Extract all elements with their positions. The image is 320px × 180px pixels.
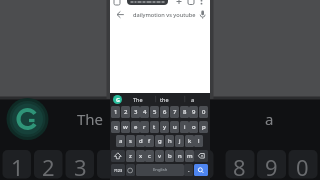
staticText: 1 [11, 152, 24, 180]
staticText: d [139, 137, 143, 145]
staticText: a [265, 109, 274, 129]
staticText: 4 [143, 108, 147, 116]
staticText: a [119, 137, 123, 145]
button[interactable]: 0 [199, 106, 208, 118]
button[interactable]: z [126, 150, 135, 162]
staticText: 7 [193, 152, 206, 180]
button[interactable]: G [113, 95, 122, 104]
button[interactable]: q [111, 121, 120, 133]
staticText: English [153, 167, 168, 173]
staticText: 9 [265, 152, 278, 180]
staticText: 6 [163, 108, 167, 116]
staticText: 5 [153, 108, 157, 116]
button[interactable]: u [170, 121, 179, 133]
staticText: 2 [42, 152, 55, 180]
button[interactable]: 4 [140, 106, 149, 118]
staticText: o [192, 123, 196, 131]
button[interactable]: m [185, 150, 194, 162]
staticText: n [178, 152, 182, 160]
staticText: x [139, 152, 143, 160]
staticText: 3 [74, 152, 87, 180]
button[interactable]: p [199, 121, 208, 133]
staticText: 8 [233, 152, 246, 180]
button[interactable]: ?123 [111, 164, 125, 176]
button[interactable]: dailymotion vs youtube [133, 10, 203, 20]
button[interactable]: a [183, 95, 203, 104]
staticText: s [129, 137, 132, 145]
button[interactable]: o [189, 121, 198, 133]
staticText: c [148, 152, 151, 160]
staticText: t [153, 123, 156, 131]
button[interactable]: l [194, 135, 203, 147]
button[interactable]: 6 [160, 106, 169, 118]
staticText: y [163, 123, 167, 131]
staticText: w [123, 123, 128, 131]
staticText: 1 [114, 108, 118, 116]
staticText: The [77, 109, 104, 129]
button[interactable]: k [185, 135, 194, 147]
button[interactable]: b [165, 150, 174, 162]
button[interactable]: h [165, 135, 174, 147]
staticText: the [160, 96, 169, 103]
button[interactable] [111, 150, 125, 162]
button[interactable]: r [140, 121, 149, 133]
staticText: b [168, 152, 172, 160]
staticText: ?123 [114, 168, 123, 173]
staticText: u [173, 123, 177, 131]
button[interactable]: 8 [180, 106, 189, 118]
staticText: The [133, 96, 143, 103]
staticText: k [188, 137, 192, 145]
button[interactable]: y [160, 121, 169, 133]
staticText: m [187, 152, 193, 160]
staticText: q [114, 123, 118, 131]
staticText: 0 [202, 108, 206, 116]
staticText: g [158, 137, 162, 145]
button[interactable] [126, 164, 135, 176]
button[interactable]: w [121, 121, 130, 133]
button[interactable]: a [116, 135, 125, 147]
staticText: h [168, 137, 172, 145]
button[interactable] [127, 0, 168, 5]
button[interactable]: 1 [111, 106, 120, 118]
button[interactable] [194, 164, 208, 176]
button[interactable]: the [154, 95, 174, 104]
staticText: l [198, 137, 200, 145]
button[interactable] [194, 150, 208, 162]
button[interactable]: 2 [121, 106, 130, 118]
button[interactable]: 9 [189, 106, 198, 118]
button[interactable]: 7 [170, 106, 179, 118]
staticText: r [143, 123, 146, 131]
staticText: j [179, 137, 181, 145]
staticText: z [129, 152, 132, 160]
button[interactable]: English [136, 164, 184, 176]
staticText: 2 [124, 108, 128, 116]
button[interactable]: j [175, 135, 184, 147]
button[interactable]: s [126, 135, 135, 147]
staticText: . [188, 166, 190, 174]
button[interactable]: . [184, 164, 193, 176]
staticText: G [116, 96, 120, 103]
button[interactable]: n [175, 150, 184, 162]
staticText: p [202, 123, 206, 131]
button[interactable]: e [131, 121, 140, 133]
staticText: 8 [183, 108, 187, 116]
button[interactable]: The [128, 95, 148, 104]
button[interactable]: 5 [150, 106, 159, 118]
staticText: e [134, 123, 138, 131]
button[interactable]: d [136, 135, 145, 147]
button[interactable]: t [150, 121, 159, 133]
staticText: 3 [134, 108, 138, 116]
button[interactable]: g [155, 135, 164, 147]
button[interactable]: i [180, 121, 189, 133]
button[interactable]: v [155, 150, 164, 162]
staticText: dailymotion vs youtube [133, 11, 196, 19]
button[interactable]: f [145, 135, 154, 147]
button[interactable]: 3 [131, 106, 140, 118]
staticText: 7 [173, 108, 177, 116]
staticText: a [191, 96, 195, 103]
staticText: f [148, 137, 151, 145]
staticText: 0 [296, 152, 309, 180]
staticText: v [158, 152, 162, 160]
button[interactable]: x [136, 150, 145, 162]
button[interactable]: c [145, 150, 154, 162]
